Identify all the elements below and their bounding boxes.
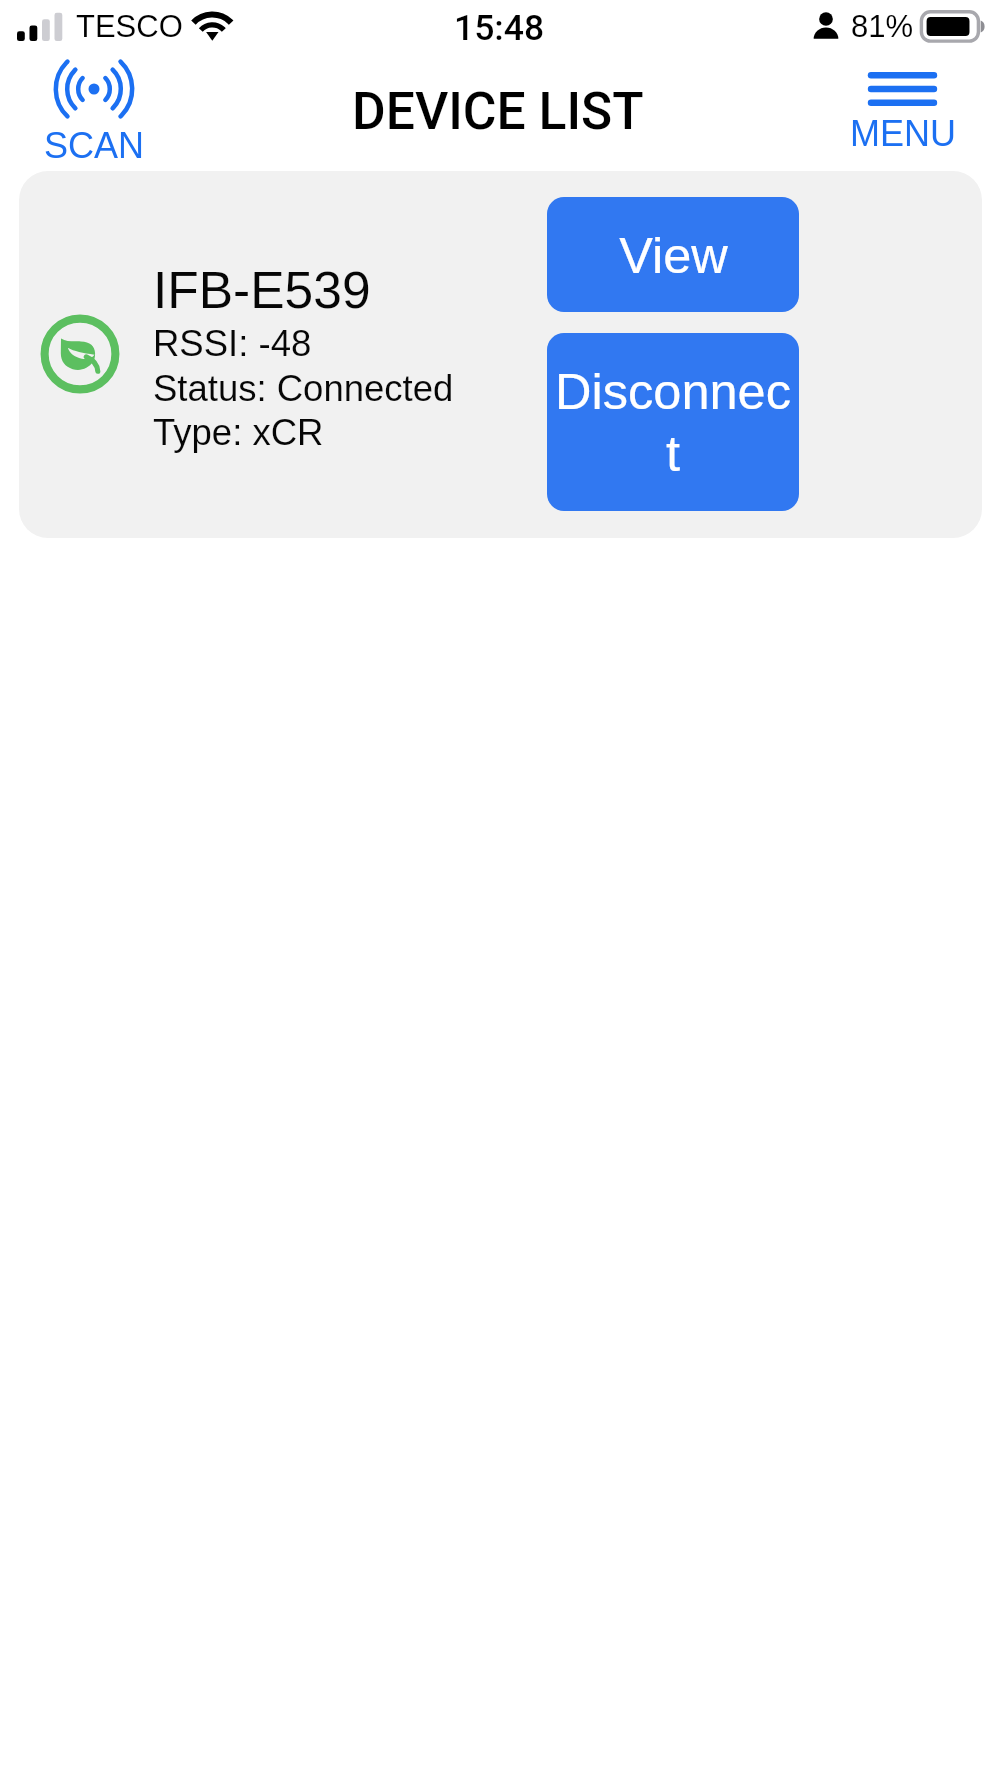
staticText: DEVICE LIST [352, 81, 644, 141]
staticText: TESCO [76, 9, 183, 44]
staticText: IFB-E539 [153, 261, 371, 319]
staticText: 15:48 [454, 7, 545, 49]
button[interactable]: View [547, 197, 799, 312]
staticText: View [619, 227, 728, 283]
button[interactable]: Disconnect [547, 333, 799, 511]
button[interactable]: IFB-E539 [19, 171, 982, 538]
staticText: 81% [851, 9, 914, 44]
staticText: Disconnect [555, 363, 791, 482]
staticText: MENU [850, 113, 956, 153]
button[interactable]: Scan for devices [23, 58, 165, 165]
staticText: SCAN [44, 125, 145, 165]
button[interactable]: Menu [840, 72, 965, 153]
staticText: RSSI: -48 Status: Connected Type: xCR [153, 323, 454, 452]
